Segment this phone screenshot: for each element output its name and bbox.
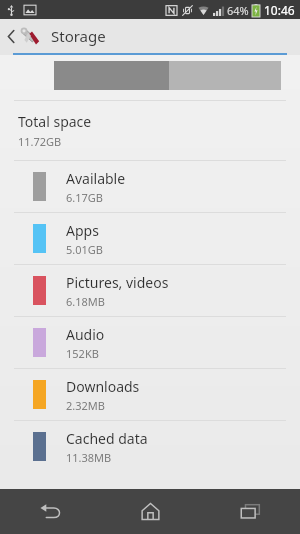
button[interactable]: Downloads — [0, 369, 300, 420]
button[interactable]: Home — [100, 489, 200, 534]
staticText: 10:46 — [264, 2, 295, 18]
staticText: Apps — [66, 221, 99, 240]
button[interactable]: Recent apps — [200, 489, 300, 534]
staticText: 5.01GB — [66, 242, 103, 257]
button[interactable]: Cached data — [0, 421, 300, 472]
button[interactable]: Back — [0, 489, 100, 534]
button[interactable]: Total space — [0, 101, 300, 160]
button[interactable]: Pictures, videos — [0, 265, 300, 316]
staticText: Audio — [66, 325, 105, 344]
staticText: 152KB — [66, 346, 99, 361]
staticText: Storage — [51, 26, 106, 46]
staticText: Pictures, videos — [66, 273, 169, 292]
button[interactable]: Apps — [0, 213, 300, 264]
button[interactable]: Available — [0, 161, 300, 212]
staticText: Total space — [18, 112, 92, 131]
staticText: Downloads — [66, 377, 140, 396]
staticText: Cached data — [66, 429, 148, 448]
staticText: 6.17GB — [66, 190, 103, 205]
button[interactable]: Navigate up — [0, 22, 44, 50]
staticText: 11.72GB — [18, 134, 62, 149]
button[interactable]: Audio — [0, 317, 300, 368]
staticText: 64% — [227, 3, 249, 18]
staticText: 11.38MB — [66, 450, 112, 465]
staticText: Available — [66, 169, 126, 188]
staticText: 6.18MB — [66, 294, 105, 309]
staticText: 2.32MB — [66, 398, 105, 413]
